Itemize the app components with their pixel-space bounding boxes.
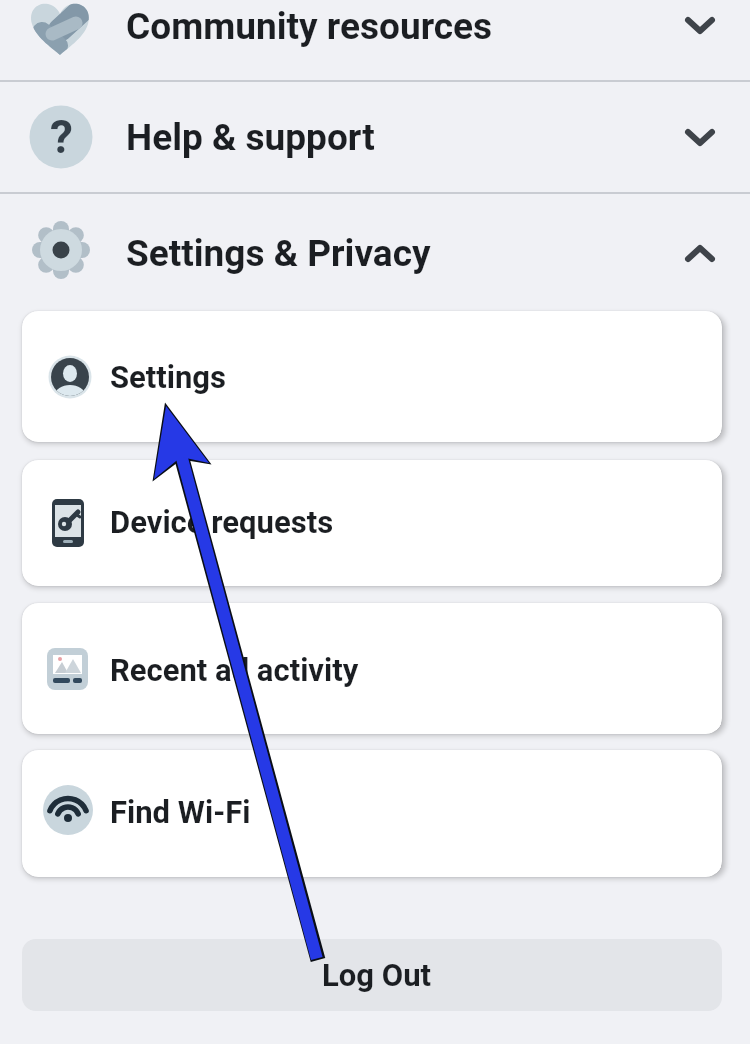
button[interactable] — [22, 603, 722, 734]
staticText: Find Wi-Fi — [110, 794, 251, 830]
button[interactable] — [0, 194, 750, 306]
staticText: Recent ad activity — [110, 652, 359, 688]
button[interactable]: Log Out — [22, 939, 722, 1011]
staticText: Help & support — [126, 116, 375, 159]
button[interactable] — [0, 82, 750, 192]
staticText: Settings & Privacy — [126, 232, 431, 275]
button[interactable] — [22, 460, 722, 586]
staticText: Settings — [110, 359, 227, 395]
button[interactable] — [0, 0, 750, 80]
staticText: Device requests — [110, 504, 334, 540]
staticText: Community resources — [126, 5, 493, 48]
staticText: Log Out — [322, 957, 431, 993]
staticText: ? — [50, 110, 73, 164]
button[interactable] — [22, 750, 722, 877]
button[interactable] — [22, 311, 722, 442]
